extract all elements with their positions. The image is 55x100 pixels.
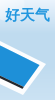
staticText: 好天气 — [5, 6, 50, 24]
